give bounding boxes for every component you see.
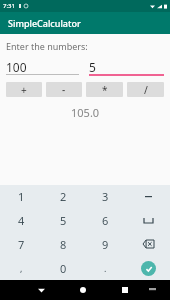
button[interactable]: 8 — [42, 232, 84, 256]
button[interactable]: Home — [75, 282, 91, 298]
staticText: / — [144, 83, 148, 97]
button[interactable]: 2 — [42, 185, 84, 208]
button[interactable]: - — [46, 82, 82, 97]
button[interactable]: Space — [127, 208, 170, 232]
button[interactable]: Backspace — [127, 232, 170, 256]
staticText: 9 — [102, 237, 109, 252]
button[interactable]: 7 — [0, 232, 42, 256]
button[interactable]: + — [6, 82, 42, 97]
button[interactable]: 0 — [42, 256, 84, 280]
staticText: 105.0 — [71, 105, 100, 120]
button[interactable]: / — [127, 82, 164, 97]
staticText: * — [102, 83, 108, 97]
staticText: 4 — [18, 213, 25, 228]
button[interactable]: Recents — [117, 282, 133, 298]
staticText: 5 — [89, 59, 96, 74]
button[interactable]: , — [0, 256, 42, 280]
staticText: 8 — [60, 237, 67, 252]
button[interactable]: . — [84, 256, 127, 280]
staticText: 3 — [102, 189, 109, 204]
staticText: - — [62, 83, 66, 97]
button[interactable]: 4 — [0, 208, 42, 232]
button[interactable]: 3 — [84, 185, 127, 208]
staticText: 5 — [60, 213, 67, 228]
staticText: 7:31 — [3, 2, 15, 10]
staticText: 6 — [102, 213, 109, 228]
button[interactable]: 1 — [0, 185, 42, 208]
button[interactable]: 6 — [84, 208, 127, 232]
staticText: SimpleCalculator — [8, 17, 81, 29]
button[interactable]: Switch keyboard — [145, 283, 159, 297]
button[interactable]: 9 — [84, 232, 127, 256]
staticText: 1 — [18, 189, 25, 204]
button[interactable]: Minus — [127, 185, 170, 208]
staticText: 2 — [60, 189, 67, 204]
staticText: + — [21, 83, 27, 97]
staticText: 100 — [6, 59, 27, 74]
staticText: 0 — [60, 261, 67, 276]
staticText: . — [104, 262, 107, 274]
staticText: , — [20, 262, 23, 274]
button[interactable]: Done — [127, 256, 170, 280]
staticText: 7 — [18, 237, 25, 252]
button[interactable]: Back — [33, 282, 49, 298]
staticText: Enter the numbers: — [6, 40, 88, 52]
button[interactable]: 5 — [42, 208, 84, 232]
button[interactable]: * — [86, 82, 123, 97]
